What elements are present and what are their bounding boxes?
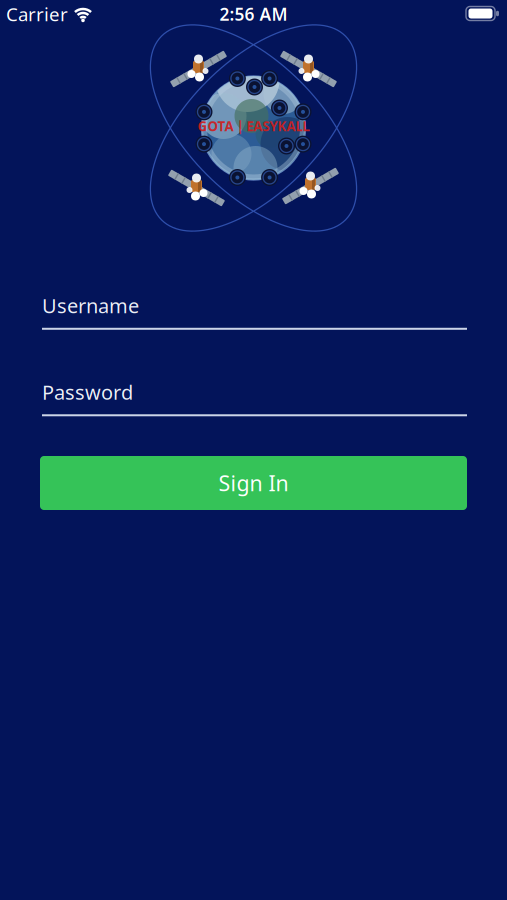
staticText: Username bbox=[42, 292, 139, 319]
staticText: Sign In bbox=[218, 469, 288, 497]
staticText: Carrier bbox=[6, 2, 68, 26]
staticText: GOTA | EASYKALL bbox=[197, 117, 309, 135]
button[interactable]: Username bbox=[42, 292, 467, 330]
staticText: 2:56 AM bbox=[219, 2, 287, 25]
staticText: Password bbox=[42, 379, 133, 405]
button[interactable]: Password bbox=[42, 379, 467, 416]
button[interactable]: Sign In bbox=[40, 456, 467, 510]
